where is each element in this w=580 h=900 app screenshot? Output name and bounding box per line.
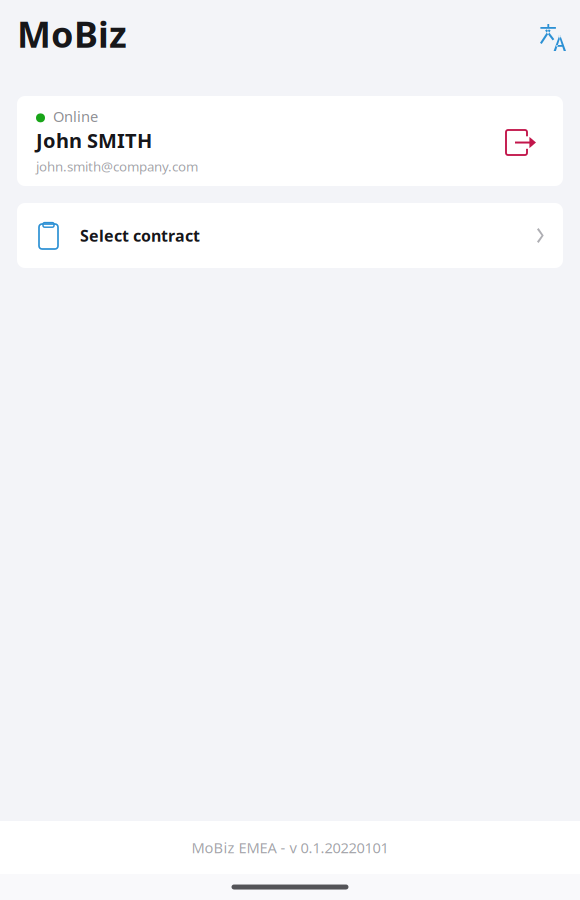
button[interactable]: Translate <box>530 10 566 57</box>
button[interactable]: Sign out <box>494 116 536 166</box>
staticText: John SMITH <box>36 127 152 153</box>
staticText: john.smith@company.com <box>36 157 198 175</box>
staticText: MoBiz <box>17 10 127 58</box>
staticText: MoBiz EMEA - v 0.1.20220101 <box>191 838 388 857</box>
staticText: Select contract <box>80 225 200 246</box>
button[interactable]: Select contract <box>17 203 563 268</box>
staticText: Online <box>53 107 98 126</box>
